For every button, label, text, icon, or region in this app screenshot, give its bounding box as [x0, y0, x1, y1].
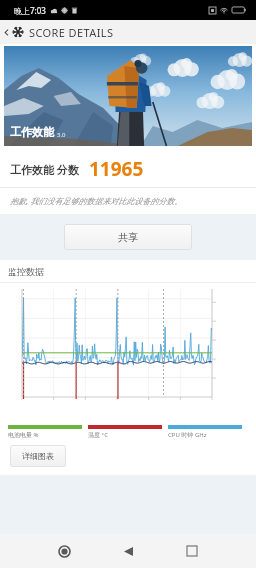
staticText: 抱歉, 我们没有足够的数据来对比此设备的分数。 — [10, 195, 183, 206]
staticText: 共享 — [118, 231, 138, 244]
staticText: 晚上7:03 — [14, 5, 46, 16]
staticText: CPU 时钟 GHz — [168, 431, 207, 439]
button[interactable]: 详细图表 — [10, 445, 66, 467]
staticText: 11965 — [89, 156, 144, 182]
staticText: 工作效能 分数 — [10, 162, 79, 177]
button[interactable]: 共享 — [64, 224, 192, 250]
staticText: 详细图表 — [22, 451, 54, 461]
staticText: 工作效能 — [10, 125, 54, 139]
button[interactable]: Recent apps — [172, 534, 212, 568]
button[interactable]: Home — [44, 534, 84, 568]
staticText: SCORE DETAILS — [29, 25, 114, 40]
button[interactable]: Back — [108, 534, 148, 568]
staticText: 3.0 — [57, 131, 66, 139]
staticText: 温度 °C — [88, 431, 108, 439]
staticText: 电池电量 % — [8, 431, 39, 439]
button[interactable]: Back — [0, 20, 12, 44]
staticText: 监控数据 — [8, 266, 44, 277]
